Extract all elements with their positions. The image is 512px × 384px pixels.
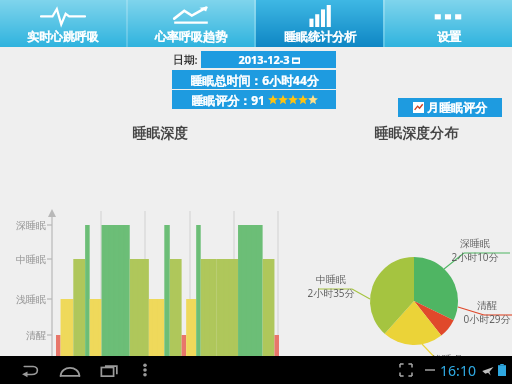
staticText: 2013-12-3: [238, 52, 290, 67]
button[interactable]: Fullscreen: [392, 356, 420, 384]
button[interactable]: Back: [10, 356, 50, 384]
staticText: 深睡眠: [16, 219, 46, 232]
staticText: 睡眠深度: [132, 125, 188, 143]
staticText: 中睡眠: [316, 273, 346, 286]
staticText: 深睡眠: [460, 237, 490, 250]
staticText: 睡眠总时间：6小时44分: [190, 72, 319, 88]
staticText: 2小时10分: [451, 250, 499, 264]
button[interactable]: 月睡眠评分: [398, 98, 502, 117]
button[interactable]: Recents: [90, 356, 130, 384]
staticText: 23:46: [88, 365, 114, 379]
button[interactable]: 心率呼吸趋势: [128, 0, 254, 47]
staticText: 1小时30分: [423, 366, 471, 380]
staticText: 月睡眠评分: [427, 100, 487, 115]
button[interactable]: 设置: [385, 0, 512, 47]
staticText: 睡眠统计分析: [284, 29, 356, 44]
staticText: 2小时35分: [307, 286, 355, 300]
staticText: 实时心跳呼吸: [27, 29, 99, 44]
staticText: 16:10: [440, 361, 476, 380]
staticText: 浅睡眠: [16, 293, 46, 306]
button[interactable]: 睡眠统计分析: [256, 0, 383, 47]
staticText: 22:25: [43, 365, 69, 379]
button[interactable]: More options: [130, 356, 160, 384]
staticText: 日期:: [172, 52, 198, 67]
button[interactable]: 2013-12-3: [201, 51, 336, 68]
staticText: 中睡眠: [16, 253, 46, 266]
staticText: 01:06: [132, 365, 158, 379]
staticText: 清醒: [26, 329, 46, 342]
staticText: 清醒: [477, 299, 497, 312]
staticText: 睡眠深度分布: [374, 125, 458, 143]
staticText: 睡眠评分：91: [191, 92, 265, 108]
button[interactable]: 实时心跳呼吸: [0, 0, 126, 47]
button[interactable]: Home: [50, 356, 90, 384]
staticText: 心率呼吸趋势: [155, 29, 227, 44]
staticText: 浅睡眠: [432, 353, 462, 366]
staticText: 0小时29分: [463, 312, 511, 326]
staticText: 设置: [437, 29, 461, 44]
